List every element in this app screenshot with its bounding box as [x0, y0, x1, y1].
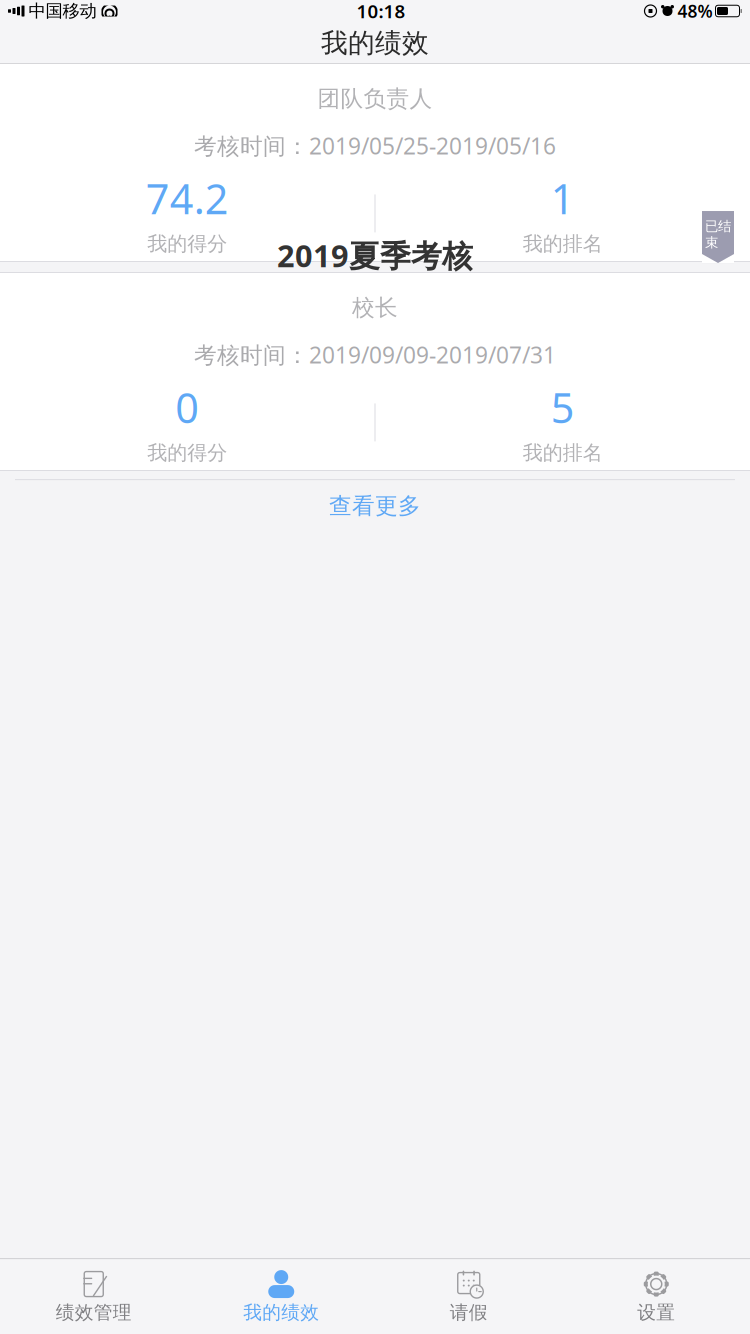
staticText: 我的绩效 [243, 1301, 319, 1324]
staticText: 5 [551, 380, 575, 435]
staticText: 2019夏季考核 [277, 235, 473, 276]
staticText: 中国移动 [28, 0, 96, 22]
staticText: 我的得分 [147, 232, 227, 256]
staticText: 我的排名 [523, 232, 603, 256]
staticText: 已结束 [705, 218, 731, 251]
staticText: 我的得分 [147, 441, 227, 465]
staticText: 已结束 [705, 9, 731, 42]
staticText: 考核时间：2019/05/25-2019/05/16 [194, 131, 556, 161]
button[interactable]: 查看更多 [0, 480, 750, 532]
staticText: 0 [175, 380, 199, 435]
staticText: 查看更多 [329, 492, 421, 520]
button[interactable]: 请假 [375, 1264, 562, 1330]
staticText: 我的绩效 [321, 27, 429, 59]
staticText: 1 [551, 171, 575, 226]
staticText: 考核时间：2019/09/09-2019/07/31 [194, 340, 556, 370]
staticText: 校长 [352, 294, 398, 321]
staticText: 团队负责人 [317, 85, 432, 112]
button[interactable]: 查看更多 [0, 271, 750, 323]
button[interactable]: 我的绩效 [187, 1264, 375, 1330]
staticText: 74.2 [146, 171, 229, 226]
staticText: 设置 [637, 1301, 675, 1324]
button[interactable]: 绩效管理 [0, 1264, 187, 1330]
staticText: 我的排名 [523, 441, 603, 465]
staticText: 请假 [450, 1301, 488, 1324]
staticText: 查看更多 [329, 283, 421, 311]
staticText: 48% [677, 0, 712, 22]
staticText: 10:18 [356, 0, 405, 23]
staticText: 绩效管理 [56, 1301, 132, 1324]
staticText: 2018-2019春季考核 [236, 26, 514, 67]
button[interactable]: 设置 [562, 1264, 750, 1330]
